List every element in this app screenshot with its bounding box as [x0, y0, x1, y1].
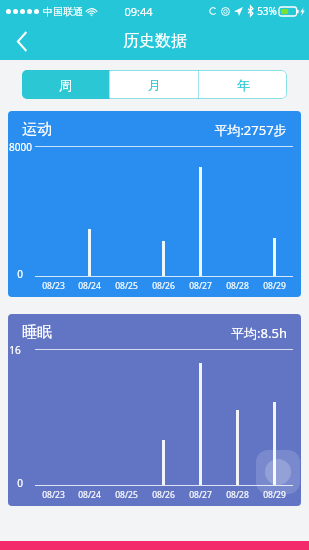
staticText: 08/25: [115, 489, 138, 501]
staticText: 8000: [9, 140, 32, 154]
button[interactable]: 运动: [8, 111, 301, 297]
button[interactable]: 周: [22, 70, 109, 99]
staticText: 平均:2757步: [214, 121, 287, 139]
staticText: 0: [17, 476, 23, 490]
staticText: 运动: [22, 120, 52, 139]
staticText: 08/26: [152, 280, 175, 292]
staticText: 08/23: [42, 489, 65, 501]
staticText: 08/26: [152, 489, 175, 501]
staticText: 平均:8.5h: [231, 324, 287, 342]
button[interactable]: Back: [0, 22, 44, 60]
staticText: 周: [59, 77, 72, 93]
staticText: 08/25: [115, 280, 138, 292]
staticText: 08/29: [263, 280, 286, 292]
staticText: 0: [17, 267, 23, 281]
staticText: 睡眠: [22, 323, 52, 342]
staticText: 08/28: [226, 489, 249, 501]
button[interactable]: 月: [110, 70, 198, 99]
staticText: 08/27: [189, 280, 212, 292]
staticText: 08/23: [42, 280, 65, 292]
staticText: 08/27: [189, 489, 212, 501]
button[interactable]: 年: [199, 70, 287, 99]
staticText: 53%: [257, 4, 277, 18]
staticText: 历史数据: [123, 31, 187, 51]
staticText: 16: [9, 343, 21, 357]
staticText: 09:44: [124, 4, 153, 19]
staticText: 08/28: [226, 280, 249, 292]
staticText: 中国联通: [43, 5, 83, 18]
staticText: 08/29: [263, 489, 286, 501]
staticText: 月: [148, 77, 161, 93]
staticText: 08/24: [78, 280, 101, 292]
staticText: 年: [237, 77, 250, 93]
button[interactable]: 睡眠: [8, 314, 301, 506]
staticText: 08/24: [78, 489, 101, 501]
button[interactable]: Assistive touch: [256, 450, 300, 494]
